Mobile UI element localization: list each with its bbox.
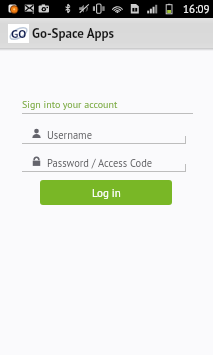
button[interactable]: [22, 155, 193, 172]
button[interactable]: Go-Space Apps: [8, 24, 29, 43]
staticText: 16:09: [183, 2, 210, 16]
staticText: Log in: [92, 186, 121, 200]
button[interactable]: Log in: [40, 180, 172, 205]
staticText: Username: [47, 128, 92, 142]
staticText: Password / Access Code: [47, 156, 153, 170]
staticText: Sign into your account: [22, 98, 118, 111]
button[interactable]: [22, 127, 193, 144]
staticText: GO: [11, 26, 27, 42]
staticText: Go-Space Apps: [32, 25, 115, 42]
